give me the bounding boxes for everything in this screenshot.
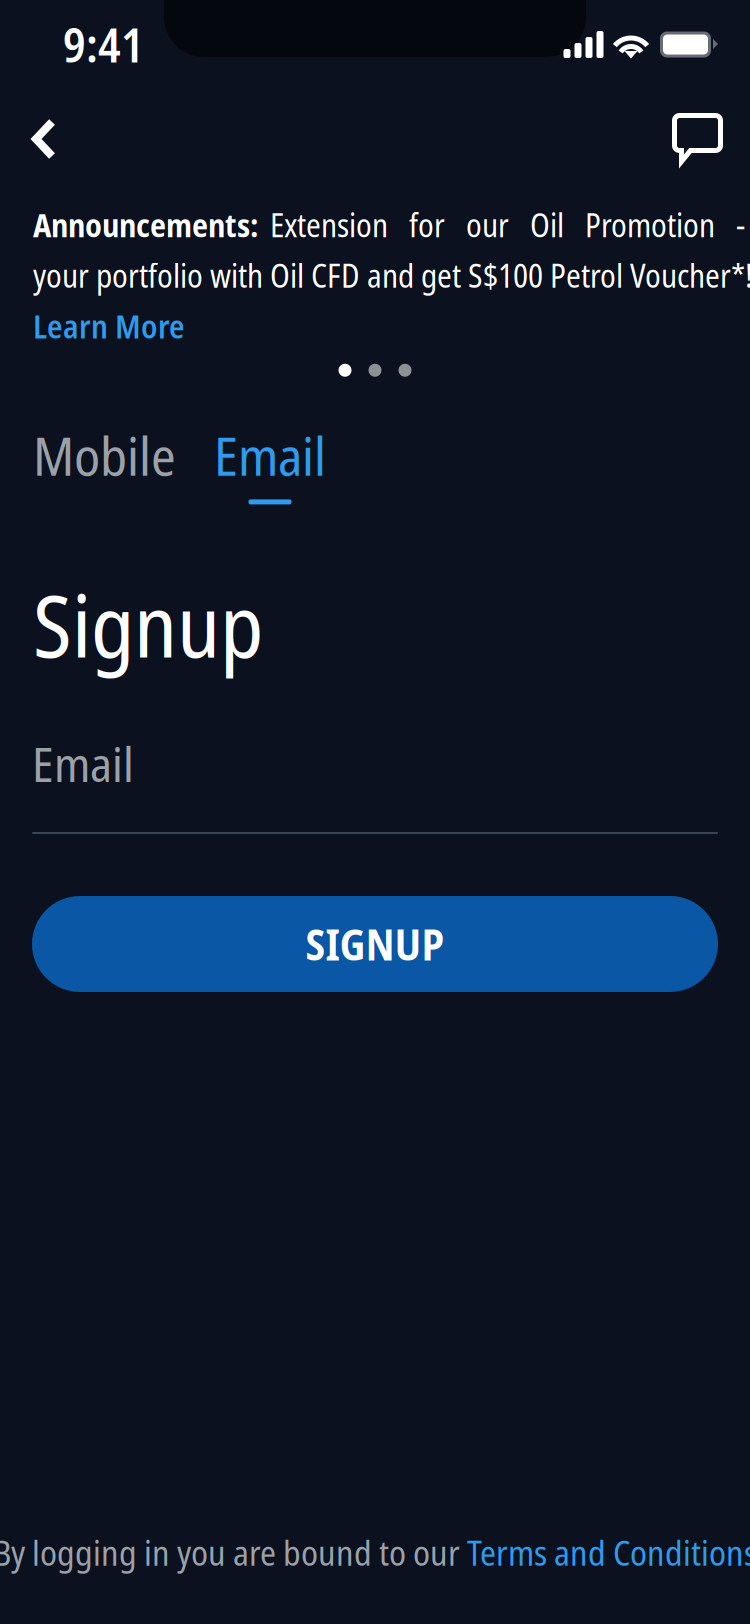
button[interactable]: Live chat xyxy=(654,95,742,183)
button[interactable]: Terms and Conditions xyxy=(467,1529,750,1576)
button[interactable]: Mobile xyxy=(33,419,176,504)
staticText: Terms and Conditions xyxy=(467,1529,750,1576)
button[interactable]: Email xyxy=(214,419,326,504)
staticText: Email xyxy=(32,731,134,796)
button[interactable]: Back xyxy=(0,95,88,183)
staticText: Mobile xyxy=(33,419,176,491)
staticText: Signup xyxy=(33,566,263,683)
staticText: Email xyxy=(214,419,326,491)
staticText: Extension for our Oil Promotion - Fuel xyxy=(270,203,750,247)
button[interactable]: SIGNUP xyxy=(32,896,718,992)
staticText: 9:41 xyxy=(63,13,144,76)
staticText: Learn More xyxy=(33,304,185,348)
staticText: your portfolio with Oil CFD and get S$10… xyxy=(33,254,750,297)
staticText: SIGNUP xyxy=(305,915,444,973)
button[interactable]: Learn More xyxy=(33,304,185,348)
staticText: By logging in you are bound to our xyxy=(0,1529,467,1576)
staticText: Announcements: xyxy=(33,203,259,247)
